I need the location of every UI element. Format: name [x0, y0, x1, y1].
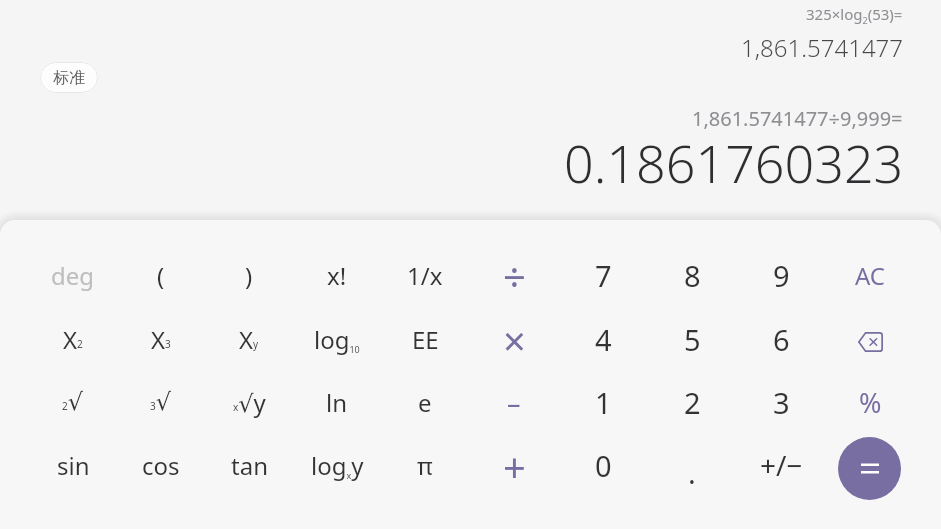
staticText: – — [507, 384, 521, 421]
button[interactable]: 6 — [745, 313, 817, 365]
staticText: 2√ — [62, 388, 84, 416]
staticText: X3 — [151, 323, 171, 356]
staticText: π — [417, 449, 433, 482]
staticText: % — [859, 384, 882, 421]
staticText: . — [688, 453, 696, 492]
button[interactable]: EE — [389, 313, 461, 365]
staticText: 1,861.5741477 — [741, 31, 903, 64]
staticText: 325×log2(53)= — [806, 4, 903, 27]
staticText: ÷ — [503, 249, 526, 301]
staticText: × — [503, 313, 526, 365]
button[interactable]: Divide — [478, 249, 550, 301]
button[interactable]: 9 — [745, 249, 817, 301]
button[interactable]: cube root — [125, 376, 197, 428]
button[interactable]: y-th root — [213, 376, 285, 428]
staticText: 4 — [595, 320, 612, 359]
staticText: +/− — [760, 446, 803, 484]
staticText: 9 — [773, 256, 790, 295]
staticText: e — [418, 386, 432, 419]
button[interactable]: Multiply — [478, 313, 550, 365]
staticText: ( — [157, 259, 165, 292]
button[interactable]: cos — [125, 439, 197, 491]
staticText: 5 — [684, 320, 701, 359]
button[interactable]: deg — [37, 249, 109, 301]
staticText: 3 — [773, 383, 790, 422]
button[interactable]: x to the y — [213, 313, 285, 365]
button[interactable]: Equals — [838, 437, 901, 500]
button[interactable]: 1/x — [389, 249, 461, 301]
button[interactable]: tan — [213, 439, 285, 491]
staticText: 标准 — [53, 68, 85, 88]
staticText: logxy — [311, 449, 364, 482]
staticText: 1,861.5741477÷9,999= — [692, 105, 903, 132]
staticText: sin — [57, 449, 90, 482]
staticText: 2 — [684, 383, 701, 422]
button[interactable]: square root — [37, 376, 109, 428]
button[interactable]: Backspace — [842, 320, 898, 364]
button[interactable]: 5 — [656, 313, 728, 365]
button[interactable]: 0 — [567, 439, 639, 491]
staticText: AC — [855, 259, 886, 292]
staticText: ) — [245, 259, 253, 292]
staticText: x√y — [233, 386, 266, 419]
staticText: ln — [326, 386, 348, 419]
staticText: EE — [412, 323, 439, 356]
button[interactable]: x squared — [37, 313, 109, 365]
staticText: log10 — [314, 323, 360, 356]
staticText: 6 — [773, 320, 790, 359]
button[interactable]: ( — [125, 249, 197, 301]
button[interactable]: 3 — [745, 376, 817, 428]
staticText: 1/x — [407, 259, 443, 292]
button[interactable]: ln — [301, 376, 373, 428]
button[interactable]: π — [389, 439, 461, 491]
staticText: deg — [51, 259, 95, 292]
staticText: Xy — [239, 323, 259, 356]
button[interactable]: sin — [37, 439, 109, 491]
button[interactable]: 8 — [656, 249, 728, 301]
button[interactable]: 7 — [567, 249, 639, 301]
button[interactable]: 标准 — [40, 62, 98, 93]
button[interactable]: log base 10 — [301, 313, 373, 365]
button[interactable]: Minus — [478, 376, 550, 428]
button[interactable]: x! — [301, 249, 373, 301]
button[interactable]: Plus — [478, 439, 550, 491]
button[interactable]: AC — [834, 249, 906, 301]
staticText: cos — [142, 449, 180, 482]
button[interactable]: ) — [213, 249, 285, 301]
staticText: 8 — [684, 256, 701, 295]
button[interactable]: log base x of y — [301, 439, 373, 491]
button[interactable]: 4 — [567, 313, 639, 365]
staticText: 3√ — [150, 388, 172, 416]
button[interactable]: x cubed — [125, 313, 197, 365]
staticText: 1 — [595, 383, 612, 422]
staticText: X2 — [63, 323, 83, 356]
staticText: + — [503, 439, 526, 491]
button[interactable]: Percent — [834, 376, 906, 428]
button[interactable]: 2 — [656, 376, 728, 428]
button[interactable]: Decimal point — [656, 439, 728, 491]
staticText: x! — [327, 259, 347, 292]
staticText: 7 — [595, 256, 612, 295]
button[interactable]: 1 — [567, 376, 639, 428]
staticText: tan — [231, 449, 268, 482]
staticText: 0 — [595, 446, 612, 485]
staticText: 0.1861760323 — [564, 127, 904, 198]
button[interactable]: e — [389, 376, 461, 428]
button[interactable]: Plus minus — [745, 439, 817, 491]
